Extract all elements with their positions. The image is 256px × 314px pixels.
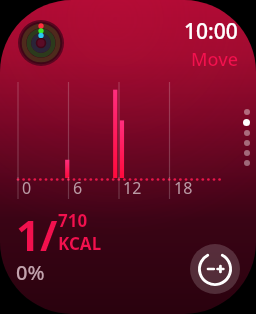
staticText: 18: [174, 177, 193, 199]
staticText: Move: [191, 47, 238, 72]
staticText: 10:00: [184, 17, 238, 46]
button[interactable]: Activity rings: [18, 20, 64, 66]
button[interactable]: Adjust goal: [190, 244, 240, 294]
staticText: 0%: [16, 259, 45, 286]
staticText: 12: [123, 177, 142, 199]
staticText: 0: [22, 177, 32, 199]
staticText: KCAL: [58, 232, 102, 255]
staticText: 1/: [16, 206, 58, 263]
staticText: 6: [73, 177, 83, 199]
staticText: 710: [58, 209, 88, 232]
